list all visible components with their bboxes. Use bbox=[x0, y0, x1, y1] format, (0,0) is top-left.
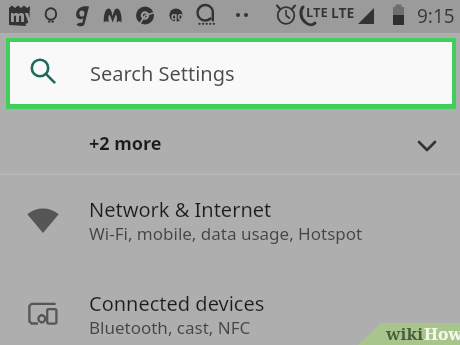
staticText: Connected devices bbox=[89, 290, 265, 317]
staticText: 9:15 bbox=[417, 3, 455, 29]
staticText: Wi-Fi, mobile, data usage, Hotspot bbox=[89, 222, 363, 245]
staticText: Bluetooth, cast, NFC bbox=[89, 316, 251, 339]
staticText: go bbox=[171, 9, 184, 23]
staticText: my bbox=[10, 6, 35, 26]
button[interactable]: +2 more bbox=[0, 110, 460, 172]
other: Search bbox=[25, 53, 55, 83]
button[interactable]: Search bbox=[6, 38, 456, 109]
button[interactable]: Network & Internet bbox=[0, 176, 460, 270]
staticText: Search Settings bbox=[90, 60, 235, 87]
staticText: Network & Internet bbox=[89, 196, 272, 223]
staticText: How bbox=[424, 322, 460, 345]
staticText: LTE bbox=[306, 3, 328, 21]
other: Expand bbox=[415, 134, 439, 158]
staticText: +2 more bbox=[89, 131, 162, 156]
staticText: wiki bbox=[386, 322, 424, 345]
button[interactable]: Connected devices bbox=[0, 270, 460, 345]
staticText: LTE bbox=[331, 3, 355, 22]
